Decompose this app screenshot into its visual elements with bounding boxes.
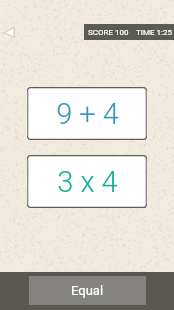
- button[interactable]: 9 + 4: [27, 87, 147, 140]
- button[interactable]: Equal: [29, 276, 146, 305]
- staticText: Equal: [71, 283, 104, 298]
- staticText: 9 + 4: [56, 97, 119, 131]
- staticText: SCORE 100: [88, 28, 129, 37]
- staticText: TIME 1:25: [136, 28, 172, 37]
- staticText: 3 x 4: [57, 165, 118, 199]
- button[interactable]: Back: [0, 23, 18, 41]
- button[interactable]: 3 x 4: [27, 155, 147, 208]
